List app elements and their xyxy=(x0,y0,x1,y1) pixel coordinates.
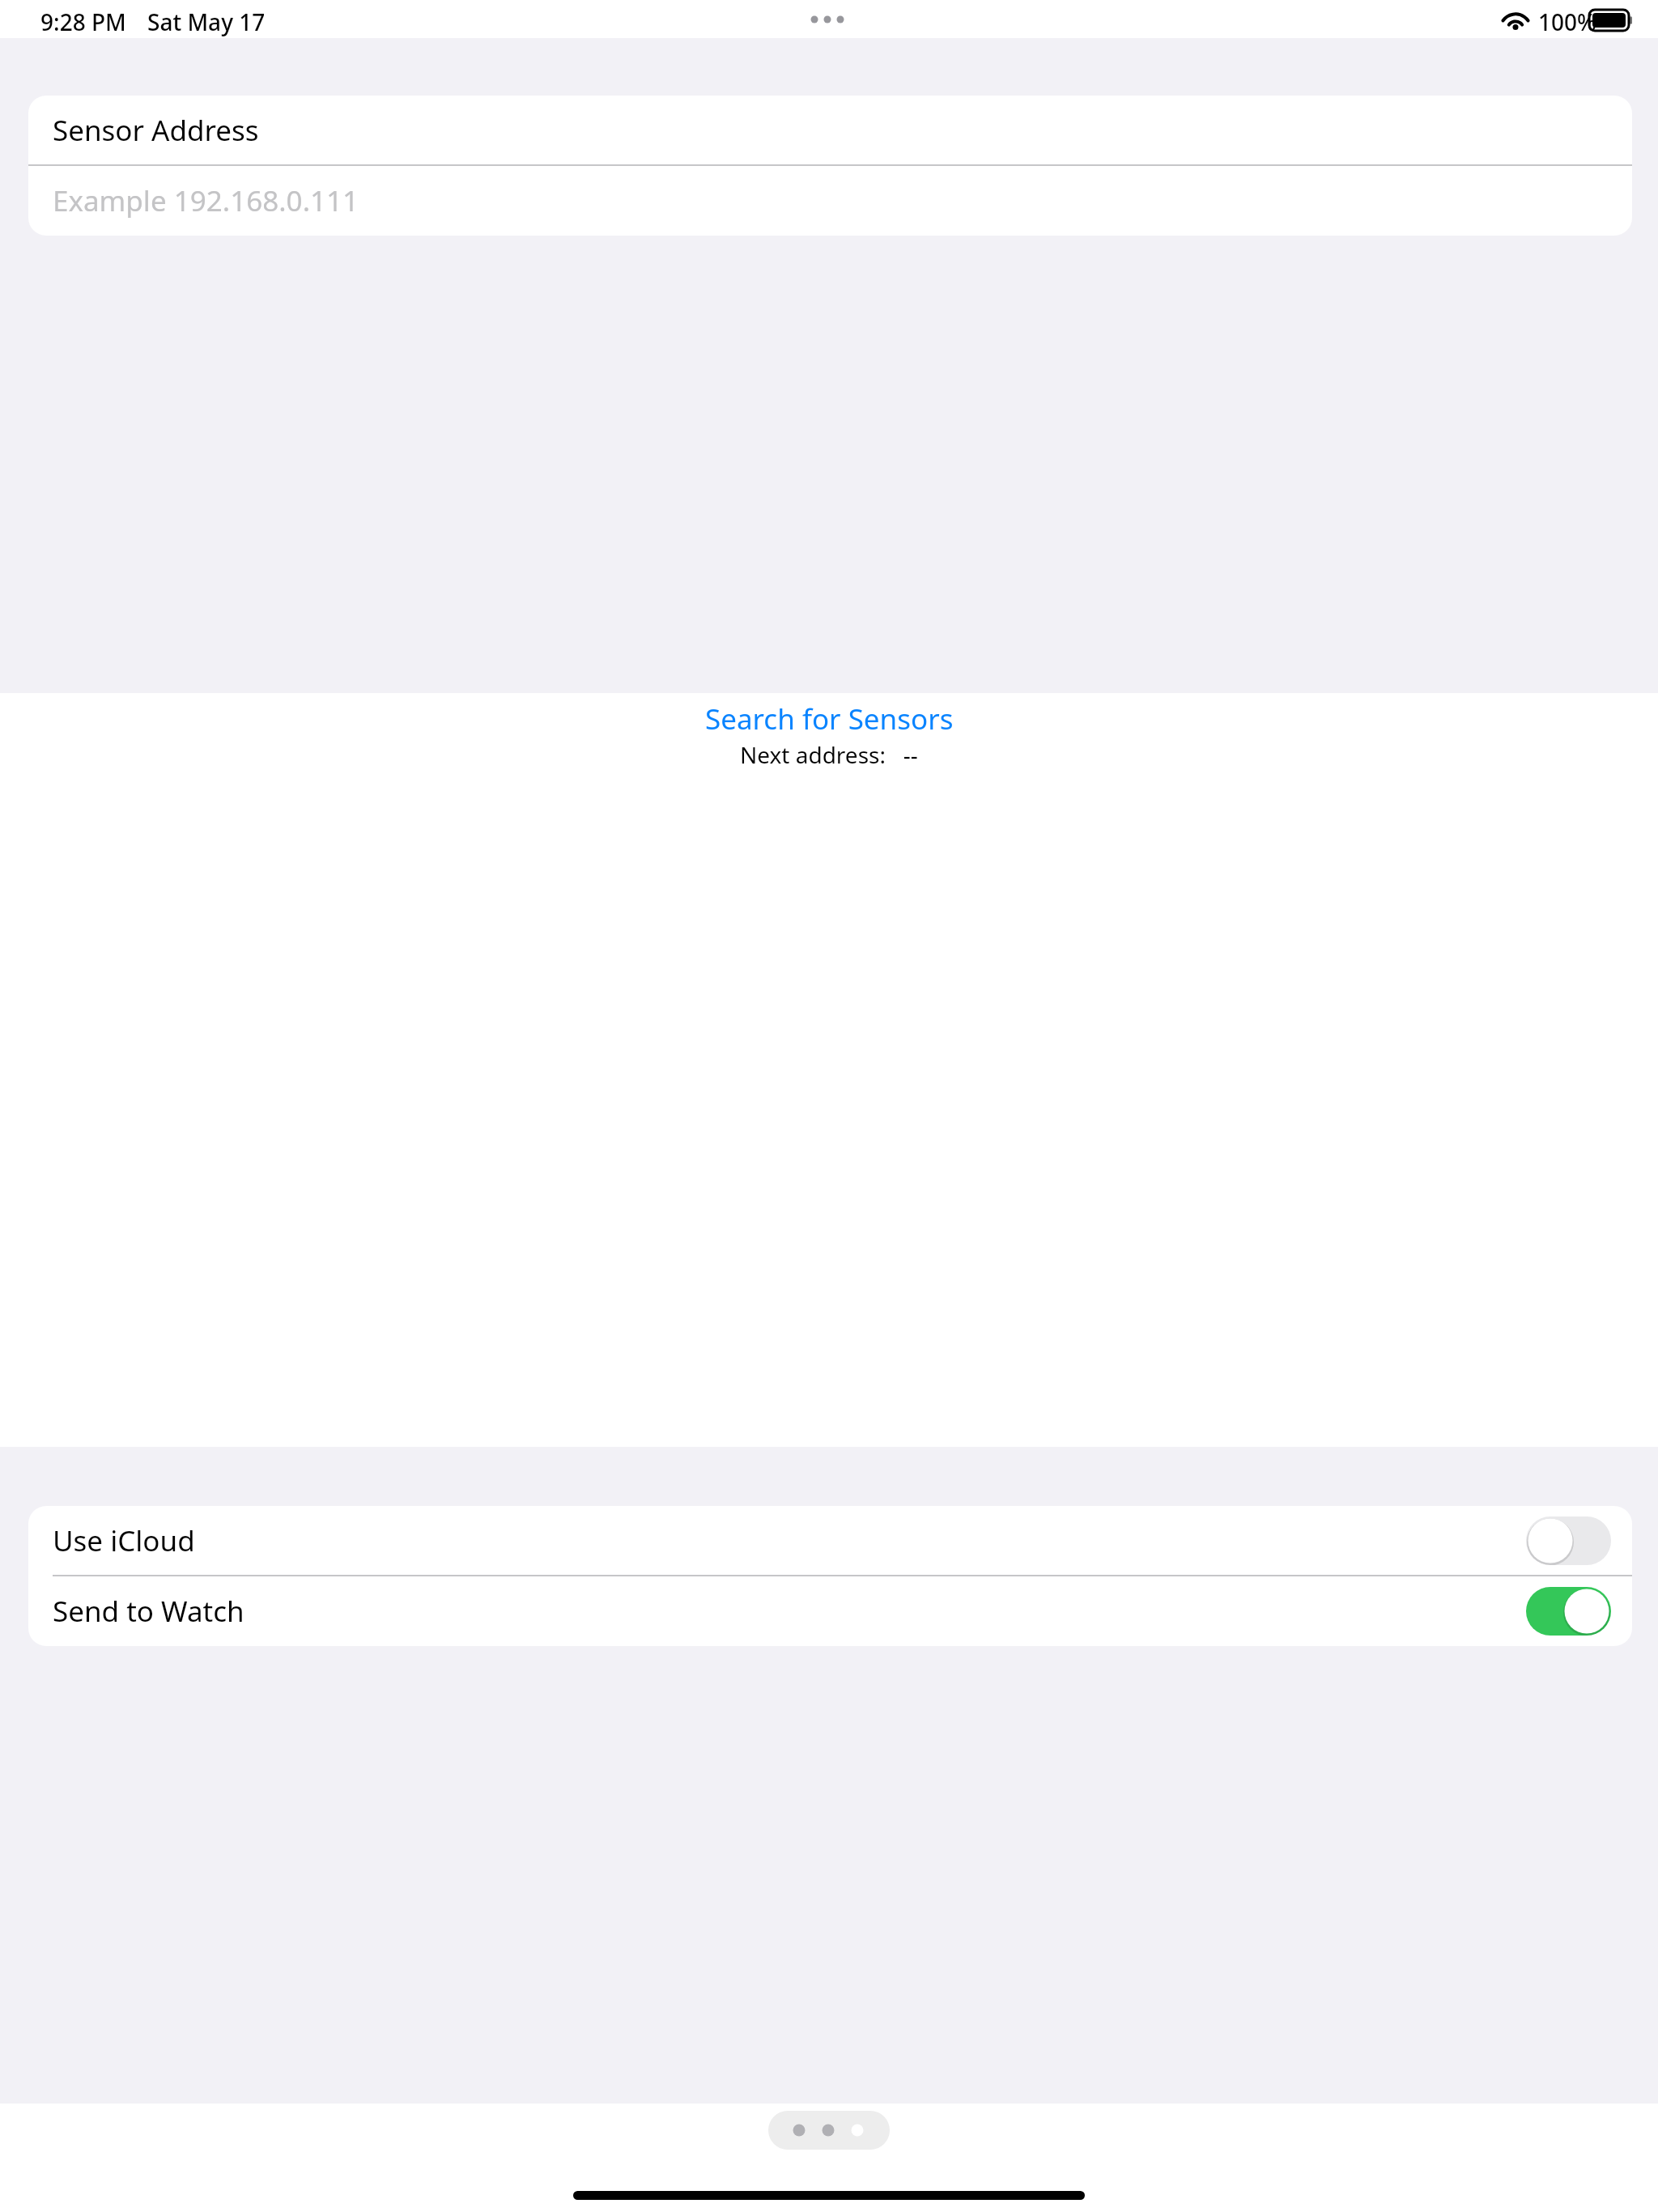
staticText: Example 192.168.0.111 xyxy=(53,181,359,220)
button[interactable]: Use iCloud off xyxy=(1526,1516,1611,1565)
staticText: Sensor Address xyxy=(53,111,259,150)
button[interactable]: Search for Sensors xyxy=(0,698,1658,740)
other: Battery 100 percent xyxy=(1589,10,1633,31)
button[interactable]: Example 192.168.0.111 xyxy=(28,166,1632,236)
button[interactable]: Sensor Address xyxy=(28,96,1632,165)
button[interactable]: Use iCloud xyxy=(28,1506,1632,1576)
button[interactable]: Send to Watch xyxy=(28,1576,1632,1646)
button[interactable]: Send to Watch on xyxy=(1526,1587,1611,1636)
other: Wi-Fi xyxy=(1499,8,1532,32)
staticText: Send to Watch xyxy=(53,1592,244,1631)
staticText: Use iCloud xyxy=(53,1521,195,1560)
staticText: Search for Sensors xyxy=(705,700,954,738)
staticText: 100% xyxy=(1538,6,1596,37)
staticText: Next address: -- xyxy=(740,739,918,770)
button[interactable]: Page indicator xyxy=(768,2111,890,2150)
staticText: Sat May 17 xyxy=(147,6,266,37)
staticText: 9:28 PM xyxy=(40,6,126,37)
